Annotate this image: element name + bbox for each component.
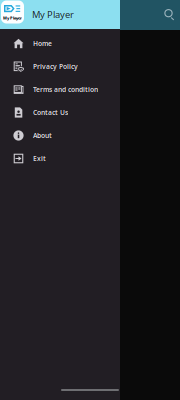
staticText: Exit — [33, 154, 46, 163]
staticText: Home — [33, 39, 52, 48]
button[interactable]: Exit — [0, 147, 120, 170]
staticText: My Player — [32, 8, 74, 21]
button[interactable]: Search — [159, 0, 180, 30]
staticText: My Player — [3, 15, 22, 21]
button[interactable]: Home — [0, 32, 120, 55]
staticText: About — [33, 131, 52, 140]
button[interactable]: About — [0, 124, 120, 147]
button[interactable]: Privacy Policy — [0, 55, 120, 78]
button[interactable]: Terms and condition — [0, 78, 120, 101]
staticText: Terms and condition — [33, 85, 98, 94]
button[interactable]: Contact Us — [0, 101, 120, 124]
staticText: Contact Us — [33, 108, 68, 117]
staticText: Privacy Policy — [33, 62, 78, 71]
